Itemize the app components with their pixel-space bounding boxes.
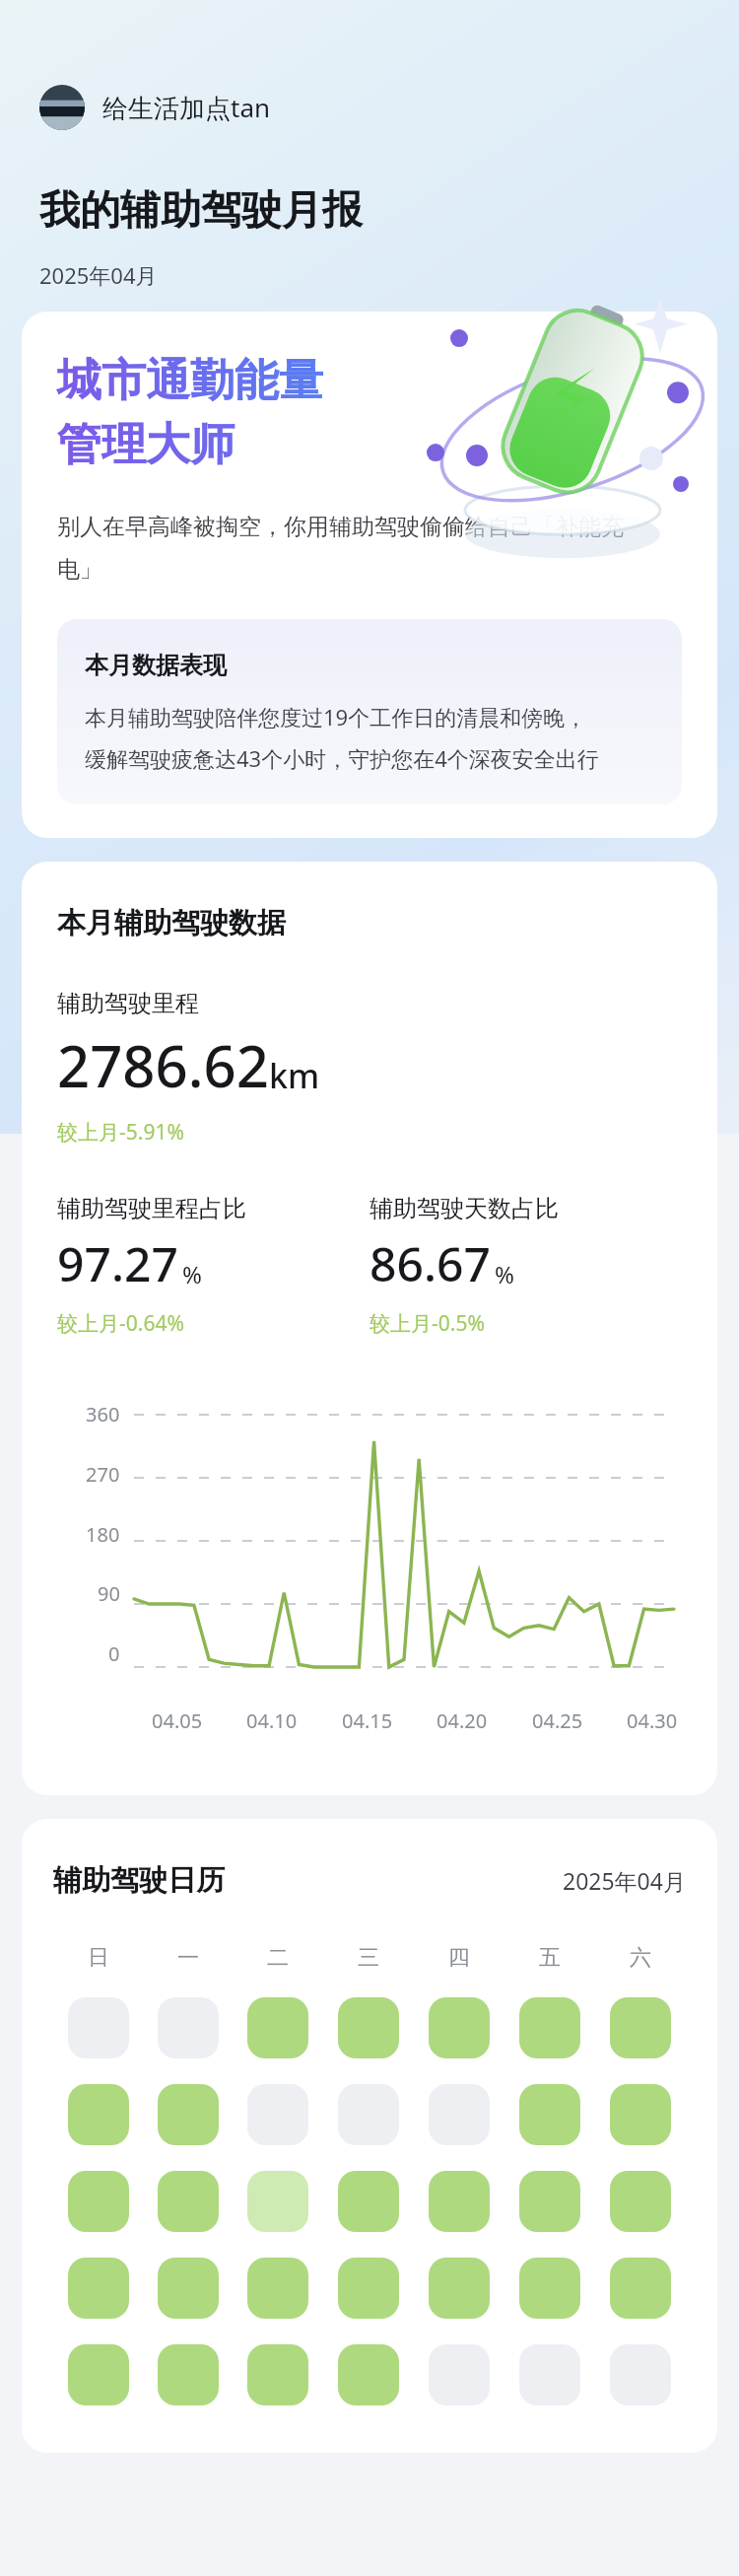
staticText: 较上月-0.64% bbox=[57, 1309, 184, 1338]
staticText: 一 bbox=[177, 1944, 199, 1972]
button[interactable] bbox=[247, 1997, 308, 2058]
staticText: 0 bbox=[108, 1640, 120, 1667]
staticText: 2025年04月 bbox=[39, 260, 158, 290]
staticText: 97.27 bbox=[57, 1231, 178, 1295]
button[interactable] bbox=[429, 2084, 490, 2145]
staticText: 给生活加点tan bbox=[102, 90, 271, 125]
staticText: 360 bbox=[86, 1401, 120, 1427]
button[interactable] bbox=[429, 2258, 490, 2319]
button[interactable]: 辅助驾驶里程占比 bbox=[57, 1194, 369, 1338]
staticText: 别人在早高峰被掏空，你用辅助驾驶偷偷给自己「补能充 bbox=[57, 513, 624, 541]
button[interactable] bbox=[610, 2171, 671, 2232]
staticText: 六 bbox=[630, 1944, 651, 1972]
staticText: 辅助驾驶天数占比 bbox=[369, 1194, 559, 1223]
staticText: 城市通勤能量 bbox=[57, 353, 323, 409]
button[interactable]: 360 bbox=[57, 1397, 682, 1752]
button[interactable] bbox=[429, 2344, 490, 2405]
button[interactable] bbox=[429, 2171, 490, 2232]
button[interactable] bbox=[338, 2344, 399, 2405]
button[interactable] bbox=[519, 2258, 580, 2319]
staticText: km bbox=[269, 1053, 320, 1098]
button[interactable] bbox=[519, 2084, 580, 2145]
staticText: 04.05 bbox=[152, 1707, 203, 1734]
button[interactable] bbox=[338, 2084, 399, 2145]
staticText: 辅助驾驶里程 bbox=[57, 989, 199, 1018]
staticText: % bbox=[182, 1258, 202, 1290]
button[interactable] bbox=[247, 2258, 308, 2319]
staticText: 三 bbox=[358, 1944, 379, 1972]
other: Energy battery illustration bbox=[424, 284, 719, 570]
staticText: 本月辅助驾驶陪伴您度过19个工作日的清晨和傍晚， bbox=[85, 702, 587, 731]
staticText: 本月辅助驾驶数据 bbox=[57, 905, 286, 941]
staticText: 90 bbox=[98, 1580, 120, 1607]
button[interactable] bbox=[610, 2084, 671, 2145]
button[interactable]: 本月数据表现 bbox=[57, 619, 682, 804]
button[interactable] bbox=[158, 2258, 219, 2319]
button[interactable] bbox=[610, 1997, 671, 2058]
staticText: 180 bbox=[86, 1521, 120, 1548]
button[interactable] bbox=[158, 2171, 219, 2232]
staticText: 04.15 bbox=[342, 1707, 393, 1734]
button[interactable] bbox=[158, 2084, 219, 2145]
other: Profile avatar bbox=[39, 85, 85, 130]
button[interactable] bbox=[429, 1997, 490, 2058]
button[interactable]: Profile avatar bbox=[39, 85, 271, 130]
button[interactable] bbox=[247, 2344, 308, 2405]
button[interactable] bbox=[68, 2084, 129, 2145]
staticText: 管理大师 bbox=[57, 417, 235, 473]
staticText: 四 bbox=[448, 1944, 470, 1972]
staticText: 辅助驾驶里程占比 bbox=[57, 1194, 246, 1223]
button[interactable] bbox=[68, 2258, 129, 2319]
staticText: 二 bbox=[267, 1944, 289, 1972]
button[interactable] bbox=[519, 1997, 580, 2058]
staticText: 我的辅助驾驶月报 bbox=[39, 185, 363, 237]
staticText: 86.67 bbox=[369, 1231, 491, 1295]
button[interactable] bbox=[158, 2344, 219, 2405]
button[interactable] bbox=[338, 2171, 399, 2232]
staticText: % bbox=[495, 1258, 514, 1290]
staticText: 较上月-5.91% bbox=[57, 1118, 184, 1147]
button[interactable]: 辅助驾驶日历 bbox=[22, 1819, 717, 2453]
button[interactable] bbox=[68, 1997, 129, 2058]
button[interactable] bbox=[519, 2344, 580, 2405]
staticText: 04.20 bbox=[437, 1707, 488, 1734]
button[interactable] bbox=[338, 2258, 399, 2319]
staticText: 日 bbox=[88, 1944, 109, 1972]
staticText: 04.30 bbox=[627, 1707, 678, 1734]
staticText: 04.25 bbox=[532, 1707, 583, 1734]
staticText: 电」 bbox=[57, 555, 102, 584]
staticText: 五 bbox=[539, 1944, 561, 1972]
button[interactable] bbox=[610, 2344, 671, 2405]
button[interactable] bbox=[247, 2171, 308, 2232]
staticText: 270 bbox=[86, 1461, 120, 1488]
button[interactable] bbox=[610, 2258, 671, 2319]
button[interactable] bbox=[338, 1997, 399, 2058]
staticText: 辅助驾驶日历 bbox=[53, 1862, 225, 1899]
button[interactable]: 本月辅助驾驶数据 bbox=[22, 862, 717, 1795]
staticText: 2786.62 bbox=[57, 1026, 269, 1104]
button[interactable]: 城市通勤能量 bbox=[22, 312, 717, 838]
staticText: 2025年04月 bbox=[563, 1865, 686, 1896]
button[interactable] bbox=[68, 2171, 129, 2232]
button[interactable]: 辅助驾驶天数占比 bbox=[369, 1194, 682, 1338]
staticText: 缓解驾驶疲惫达43个小时，守护您在4个深夜安全出行 bbox=[85, 743, 599, 773]
staticText: 较上月-0.5% bbox=[369, 1309, 485, 1338]
button[interactable] bbox=[68, 2344, 129, 2405]
button[interactable] bbox=[158, 1997, 219, 2058]
button[interactable] bbox=[519, 2171, 580, 2232]
staticText: 04.10 bbox=[246, 1707, 298, 1734]
button[interactable] bbox=[247, 2084, 308, 2145]
staticText: 本月数据表现 bbox=[85, 651, 227, 680]
